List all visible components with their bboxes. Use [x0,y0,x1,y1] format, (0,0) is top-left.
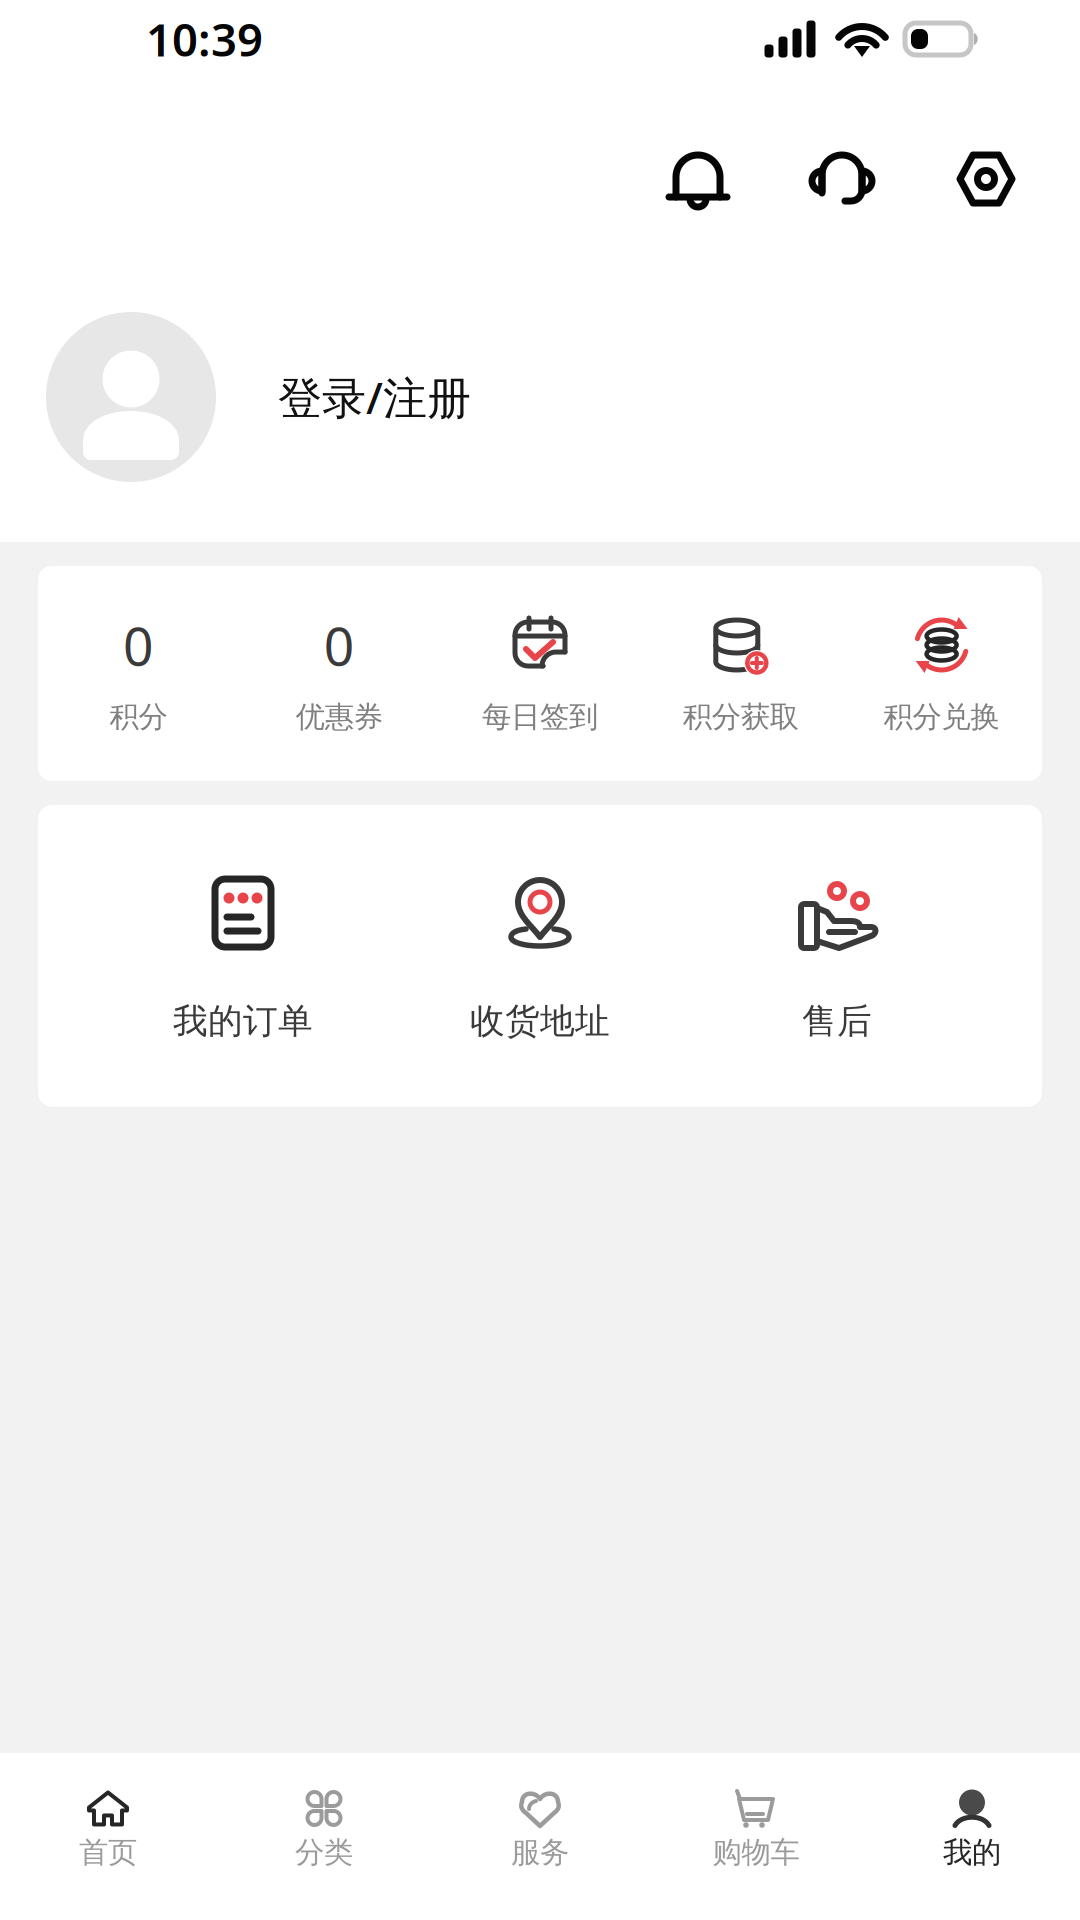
staticText: 服务 [511,1834,569,1870]
button[interactable]: 我的订单 [94,874,391,1043]
button[interactable]: 购物车 [648,1751,864,1920]
staticText: 我的订单 [173,1000,313,1043]
button[interactable]: 通知 [654,135,742,223]
staticText: 购物车 [712,1834,799,1870]
staticText: 优惠券 [296,699,383,735]
staticText: 0 [324,610,355,680]
staticText: 积分兑换 [884,699,1000,735]
button[interactable]: 客服 [798,135,886,223]
staticText: 积分获取 [683,699,799,735]
staticText: 我的 [943,1834,1001,1870]
staticText: 售后 [802,1000,872,1043]
button[interactable]: 登录/注册 [0,312,1080,482]
staticText: 0 [123,610,154,680]
staticText: 登录/注册 [278,368,471,426]
button[interactable]: 设置 [942,135,1030,223]
staticText: 每日签到 [482,699,598,735]
staticText: 积分 [109,699,167,735]
button[interactable]: 首页 [0,1751,216,1920]
button[interactable]: 分类 [216,1751,432,1920]
button[interactable]: 积分获取 [640,617,841,735]
button[interactable]: 售后 [688,874,985,1043]
button[interactable]: 积分兑换 [841,617,1042,735]
button[interactable]: 我的 [864,1751,1080,1920]
button[interactable]: 0 [239,617,440,735]
staticText: 分类 [295,1834,353,1870]
button[interactable]: 0 [38,617,239,735]
staticText: 收货地址 [470,1000,610,1043]
button[interactable]: 收货地址 [391,874,688,1043]
staticText: 首页 [79,1834,137,1870]
button[interactable]: 服务 [432,1751,648,1920]
staticText: 10:39 [146,9,263,69]
button[interactable]: 每日签到 [440,617,640,735]
